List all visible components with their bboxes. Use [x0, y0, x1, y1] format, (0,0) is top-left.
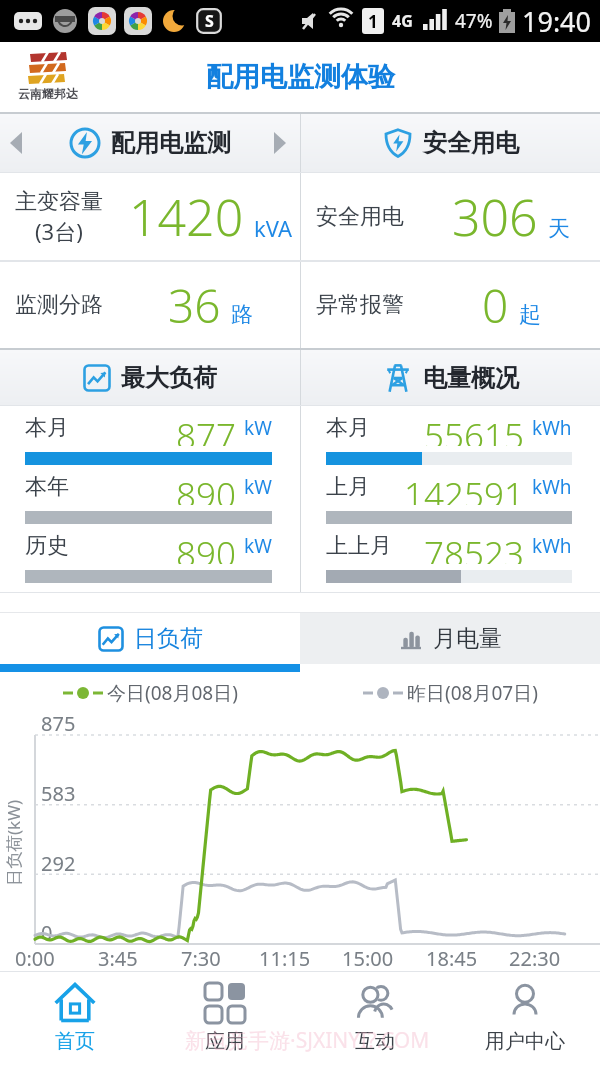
- button[interactable]: 配用电监测: [0, 114, 300, 172]
- staticText: 1420: [129, 183, 244, 251]
- staticText: 首页: [55, 1029, 95, 1054]
- button[interactable]: 安全用电: [301, 114, 600, 172]
- staticText: 应用: [205, 1029, 245, 1054]
- button[interactable]: 最大负荷: [0, 350, 300, 405]
- staticText: 最大负荷: [121, 363, 217, 393]
- button[interactable]: 上上月: [326, 530, 572, 589]
- staticText: 875: [41, 710, 76, 737]
- staticText: 4G: [392, 10, 413, 32]
- staticText: 起: [519, 301, 541, 329]
- staticText: 11:15: [259, 945, 311, 969]
- staticText: (3台): [35, 216, 83, 246]
- staticText: 583: [41, 780, 76, 807]
- staticText: 292: [41, 850, 76, 877]
- staticText: 本月: [326, 414, 370, 442]
- staticText: 142591: [404, 471, 524, 505]
- staticText: kWh: [532, 474, 572, 500]
- staticText: 877: [176, 412, 236, 446]
- staticText: 890: [176, 530, 236, 564]
- button[interactable]: 异常报警: [301, 262, 600, 348]
- staticText: 异常报警: [316, 291, 404, 319]
- staticText: kW: [244, 474, 272, 500]
- staticText: 日负荷: [134, 624, 203, 653]
- staticText: 今日(08月08日): [107, 680, 238, 706]
- staticText: 7:30: [181, 945, 221, 969]
- staticText: 安全用电: [316, 203, 404, 231]
- staticText: 安全用电: [423, 128, 519, 158]
- staticText: 上上月: [326, 532, 392, 560]
- staticText: 云南耀邦达: [18, 86, 78, 101]
- button[interactable]: 监测分路: [0, 262, 300, 348]
- button[interactable]: 主变容量: [0, 173, 300, 260]
- staticText: 用户中心: [485, 1029, 565, 1054]
- staticText: 0:00: [15, 945, 55, 969]
- staticText: 本年: [25, 473, 69, 501]
- staticText: 306: [452, 183, 538, 251]
- staticText: 47%: [455, 8, 493, 34]
- staticText: 路: [231, 301, 253, 329]
- button[interactable]: 应用: [150, 972, 300, 1063]
- staticText: kWh: [532, 415, 572, 441]
- staticText: 1: [368, 10, 378, 33]
- button[interactable]: 历史: [25, 530, 272, 589]
- staticText: 15:00: [342, 945, 394, 969]
- staticText: 电量概况: [423, 363, 519, 393]
- staticText: 上月: [326, 473, 370, 501]
- staticText: 互动: [355, 1029, 395, 1054]
- staticText: 19:40: [522, 3, 592, 40]
- staticText: kW: [244, 533, 272, 559]
- button[interactable]: 上月: [326, 471, 572, 530]
- staticText: 本月: [25, 414, 69, 442]
- staticText: kVA: [254, 213, 293, 243]
- staticText: 55615: [424, 412, 524, 446]
- staticText: 新电竞手游·SJXINYI?.COM: [185, 1026, 430, 1055]
- staticText: 主变容量: [15, 188, 103, 216]
- staticText: 18:45: [426, 945, 478, 969]
- staticText: 0: [41, 919, 53, 946]
- button[interactable]: 首页: [0, 972, 150, 1063]
- staticText: 历史: [25, 532, 69, 560]
- button[interactable]: 互动: [300, 972, 450, 1063]
- staticText: S: [205, 10, 214, 32]
- staticText: 天: [548, 215, 570, 243]
- staticText: 22:30: [509, 945, 561, 969]
- staticText: 0: [482, 274, 509, 337]
- staticText: 日负荷(kW): [2, 799, 25, 886]
- button[interactable]: 本年: [25, 471, 272, 530]
- staticText: 监测分路: [15, 291, 103, 319]
- staticText: 78523: [424, 530, 524, 564]
- button[interactable]: 用户中心: [450, 972, 600, 1063]
- button[interactable]: 电量概况: [301, 350, 600, 405]
- staticText: 3:45: [98, 945, 138, 969]
- button[interactable]: 安全用电: [301, 173, 600, 260]
- staticText: kW: [244, 415, 272, 441]
- staticText: 昨日(08月07日): [407, 680, 538, 706]
- staticText: 36: [168, 274, 221, 337]
- button[interactable]: 本月: [25, 412, 272, 471]
- staticText: 配用电监测: [111, 128, 231, 158]
- staticText: 月电量: [433, 624, 502, 653]
- staticText: 890: [176, 471, 236, 505]
- staticText: 配用电监测体验: [206, 60, 395, 94]
- button[interactable]: 月电量: [300, 613, 600, 664]
- staticText: kWh: [532, 533, 572, 559]
- button[interactable]: 本月: [326, 412, 572, 471]
- button[interactable]: 日负荷: [0, 613, 300, 664]
